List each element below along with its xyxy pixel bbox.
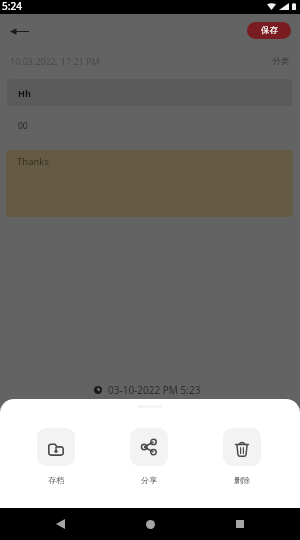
button[interactable]: Back bbox=[48, 512, 72, 536]
button[interactable]: Recent apps bbox=[228, 512, 252, 536]
staticText: 10.03.2022, 17:21 PM bbox=[10, 55, 100, 67]
button[interactable]: 存档 bbox=[37, 428, 75, 485]
button[interactable]: 删除 bbox=[223, 428, 261, 485]
staticText: Thanks bbox=[17, 155, 49, 168]
staticText: Hh bbox=[18, 87, 31, 99]
staticText: 删除 bbox=[234, 475, 250, 485]
button[interactable]: 分享 bbox=[130, 428, 168, 485]
button[interactable]: 分类 bbox=[270, 54, 291, 69]
staticText: 存档 bbox=[48, 475, 64, 485]
staticText: 00 bbox=[18, 120, 28, 132]
button[interactable]: Home bbox=[138, 512, 162, 536]
button[interactable]: Back bbox=[5, 21, 33, 41]
staticText: 分享 bbox=[141, 475, 157, 485]
staticText: 保存 bbox=[261, 25, 278, 36]
button[interactable]: Hh bbox=[7, 79, 292, 106]
button[interactable]: 保存 bbox=[247, 22, 291, 39]
staticText: 5:24 bbox=[2, 0, 22, 13]
staticText: 03-10-2022 PM 5:23 bbox=[108, 383, 201, 397]
staticText: 分类 bbox=[272, 56, 289, 67]
